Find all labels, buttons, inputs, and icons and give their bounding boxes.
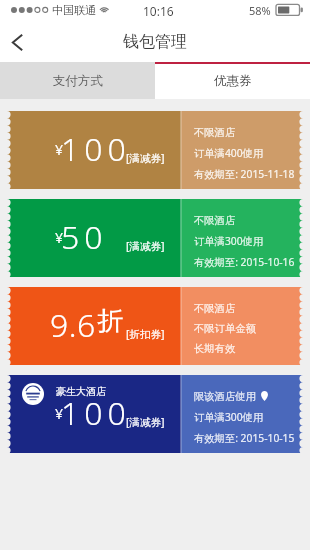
button[interactable]: 支付方式 [0,62,155,99]
staticText: 豪生大酒店 [56,385,106,398]
staticText: 不限酒店 [194,126,236,139]
staticText: 10:16 [143,3,174,19]
staticText: 50 [61,215,108,259]
staticText: 订单满400使用 [194,146,264,160]
button[interactable]: 返回 [0,25,34,59]
staticText: 不限订单金额 [194,322,256,335]
button[interactable]: 优惠券 [155,62,310,99]
button[interactable]: ¥ [7,199,303,277]
staticText: 58% [249,3,271,18]
staticText: [满减券] [126,415,165,429]
staticText: 订单满300使用 [194,410,264,424]
staticText: 有效期至: 2015-11-18 [194,167,295,181]
staticText: ¥ [55,404,64,423]
staticText: 有效期至: 2015-10-15 [194,431,295,445]
staticText: 订单满300使用 [194,234,264,248]
staticText: 100 [61,391,131,435]
staticText: ¥ [55,228,64,247]
staticText: 长期有效 [194,342,236,355]
staticText: 折 [97,304,124,337]
button[interactable]: 9.6 [7,287,303,365]
button[interactable]: ¥ [7,111,303,189]
staticText: 钱包管理 [123,32,187,52]
staticText: 支付方式 [53,73,103,89]
staticText: 有效期至: 2015-10-16 [194,255,295,269]
staticText: 9.6 [50,303,96,347]
staticText: 中国联通 [52,3,96,17]
staticText: [满减券] [126,239,165,253]
staticText: 不限酒店 [194,214,236,227]
staticText: 100 [61,127,131,171]
staticText: [折扣券] [126,327,165,341]
button[interactable]: 豪生大酒店 [7,375,303,453]
staticText: 限该酒店使用 [194,390,256,403]
staticText: 不限酒店 [194,302,236,315]
staticText: [满减券] [126,151,165,165]
staticText: ¥ [55,140,64,159]
staticText: 优惠券 [214,73,252,89]
